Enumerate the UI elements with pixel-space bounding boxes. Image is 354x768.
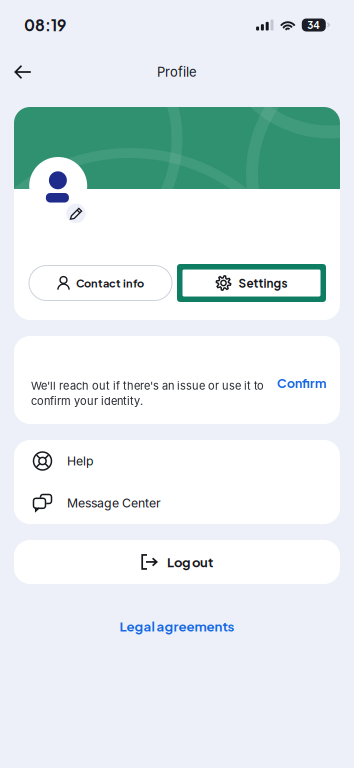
button[interactable]: Back xyxy=(1,50,45,94)
button[interactable]: Settings xyxy=(177,264,326,302)
staticText: 08:19 xyxy=(24,15,66,35)
staticText: 34 xyxy=(307,19,320,31)
staticText: Confirm xyxy=(277,375,327,391)
staticText: Profile xyxy=(157,64,197,80)
button[interactable]: Confirm xyxy=(272,374,332,392)
staticText: Log out xyxy=(167,554,213,570)
button[interactable]: Legal agreements xyxy=(119,616,234,636)
staticText: Contact info xyxy=(76,276,144,290)
staticText: Legal agreements xyxy=(119,618,234,634)
button[interactable]: Edit profile photo xyxy=(66,204,86,223)
button[interactable]: Message Center xyxy=(14,482,340,524)
button[interactable]: Log out xyxy=(14,540,340,584)
staticText: Message Center xyxy=(67,496,161,510)
staticText: Help xyxy=(67,454,94,468)
staticText: We'll reach out if there's an issue or u… xyxy=(31,379,264,408)
button[interactable]: Contact info xyxy=(29,265,172,300)
button[interactable]: Help xyxy=(14,440,340,482)
staticText: Settings xyxy=(238,276,287,290)
